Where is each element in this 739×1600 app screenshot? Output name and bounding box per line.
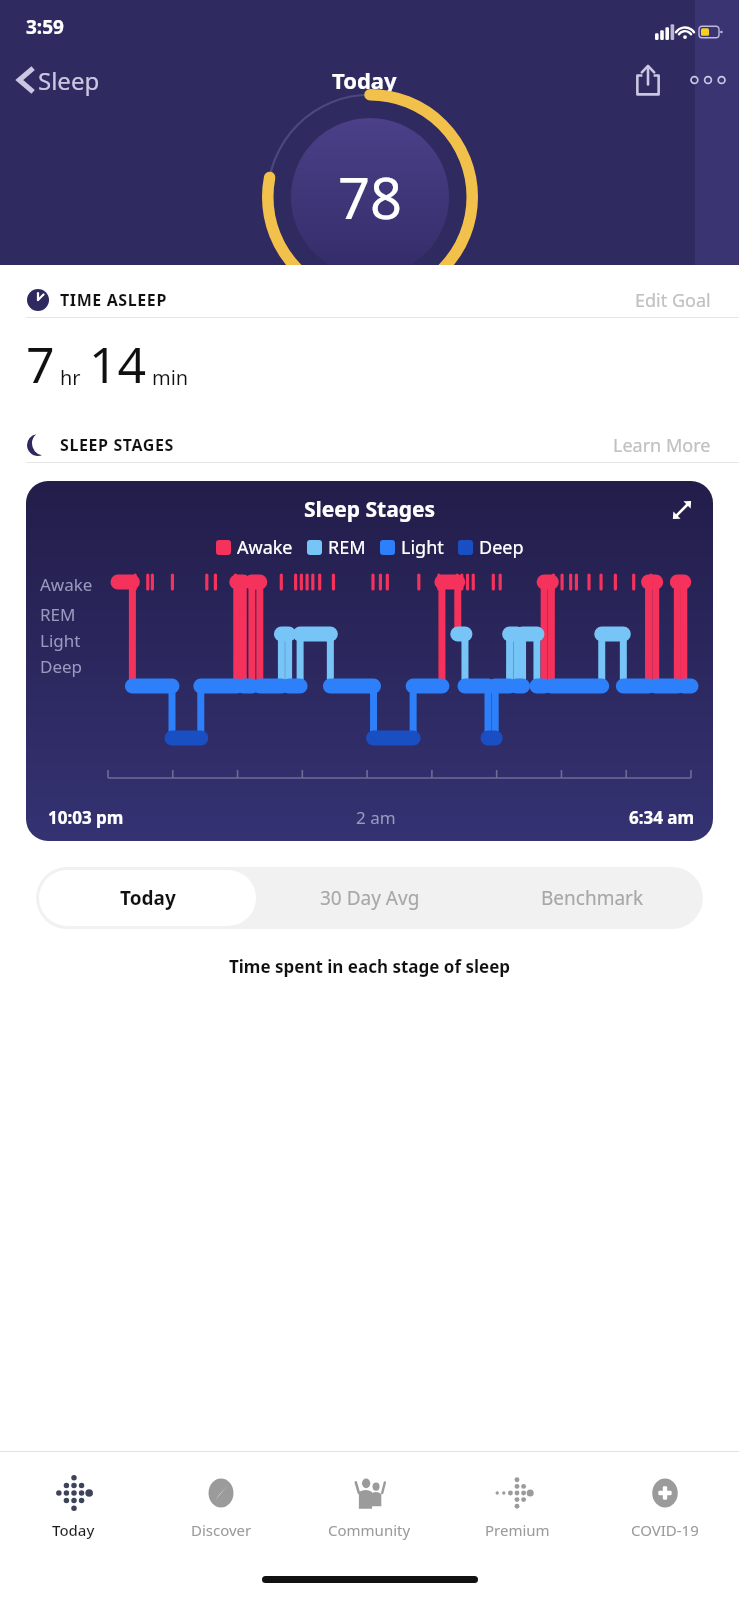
staticText: Edit Goal xyxy=(635,288,711,313)
staticText: 6:34 am xyxy=(629,806,695,829)
staticText: Time spent in each stage of sleep xyxy=(0,955,739,978)
staticText: Deep xyxy=(479,535,524,560)
button[interactable]: Share xyxy=(619,51,677,109)
staticText: Awake xyxy=(40,573,93,596)
staticText: Discover xyxy=(191,1520,252,1540)
button[interactable]: COVID-19 xyxy=(591,1452,739,1558)
staticText: Today xyxy=(52,1520,95,1540)
staticText: 7 xyxy=(26,330,55,398)
staticText: TIME ASLEEP xyxy=(60,289,167,311)
button[interactable]: Discover xyxy=(147,1452,295,1558)
staticText: 10:03 pm xyxy=(48,806,124,829)
staticText: Awake xyxy=(237,535,293,560)
staticText: Benchmark xyxy=(541,885,644,911)
staticText: REM xyxy=(328,535,366,560)
button[interactable]: Premium xyxy=(443,1452,591,1558)
button[interactable]: Sleep Stages xyxy=(26,481,713,841)
staticText: 3:59 xyxy=(26,14,64,40)
staticText: SLEEP STAGES xyxy=(60,434,175,456)
staticText: Light xyxy=(401,535,444,560)
staticText: REM xyxy=(40,603,76,626)
staticText: Learn More xyxy=(613,433,711,458)
staticText: Deep xyxy=(40,655,83,678)
staticText: Sleep xyxy=(38,64,100,97)
button[interactable]: Today xyxy=(39,870,256,926)
staticText: min xyxy=(152,364,189,391)
button[interactable]: Sleep xyxy=(0,50,110,110)
button[interactable]: Edit Goal xyxy=(633,284,713,317)
button[interactable]: Today xyxy=(0,1452,147,1558)
staticText: Light xyxy=(40,629,81,652)
button[interactable]: Expand chart xyxy=(667,495,697,525)
staticText: hr xyxy=(60,364,81,391)
staticText: 2 am xyxy=(356,806,396,829)
button[interactable]: 30 Day Avg xyxy=(259,867,481,929)
staticText: Today xyxy=(332,65,397,95)
staticText: Community xyxy=(328,1520,411,1540)
staticText: 30 Day Avg xyxy=(320,885,420,911)
staticText: COVID-19 xyxy=(631,1520,699,1540)
staticText: 78 xyxy=(338,159,403,235)
button[interactable]: Community xyxy=(295,1452,443,1558)
button[interactable]: Learn More xyxy=(611,429,713,462)
button[interactable]: Benchmark xyxy=(481,867,703,929)
staticText: 14 xyxy=(89,330,147,398)
staticText: Premium xyxy=(485,1520,550,1540)
button[interactable]: More options xyxy=(677,49,739,111)
staticText: Sleep Stages xyxy=(26,495,713,524)
staticText: Today xyxy=(120,885,176,911)
